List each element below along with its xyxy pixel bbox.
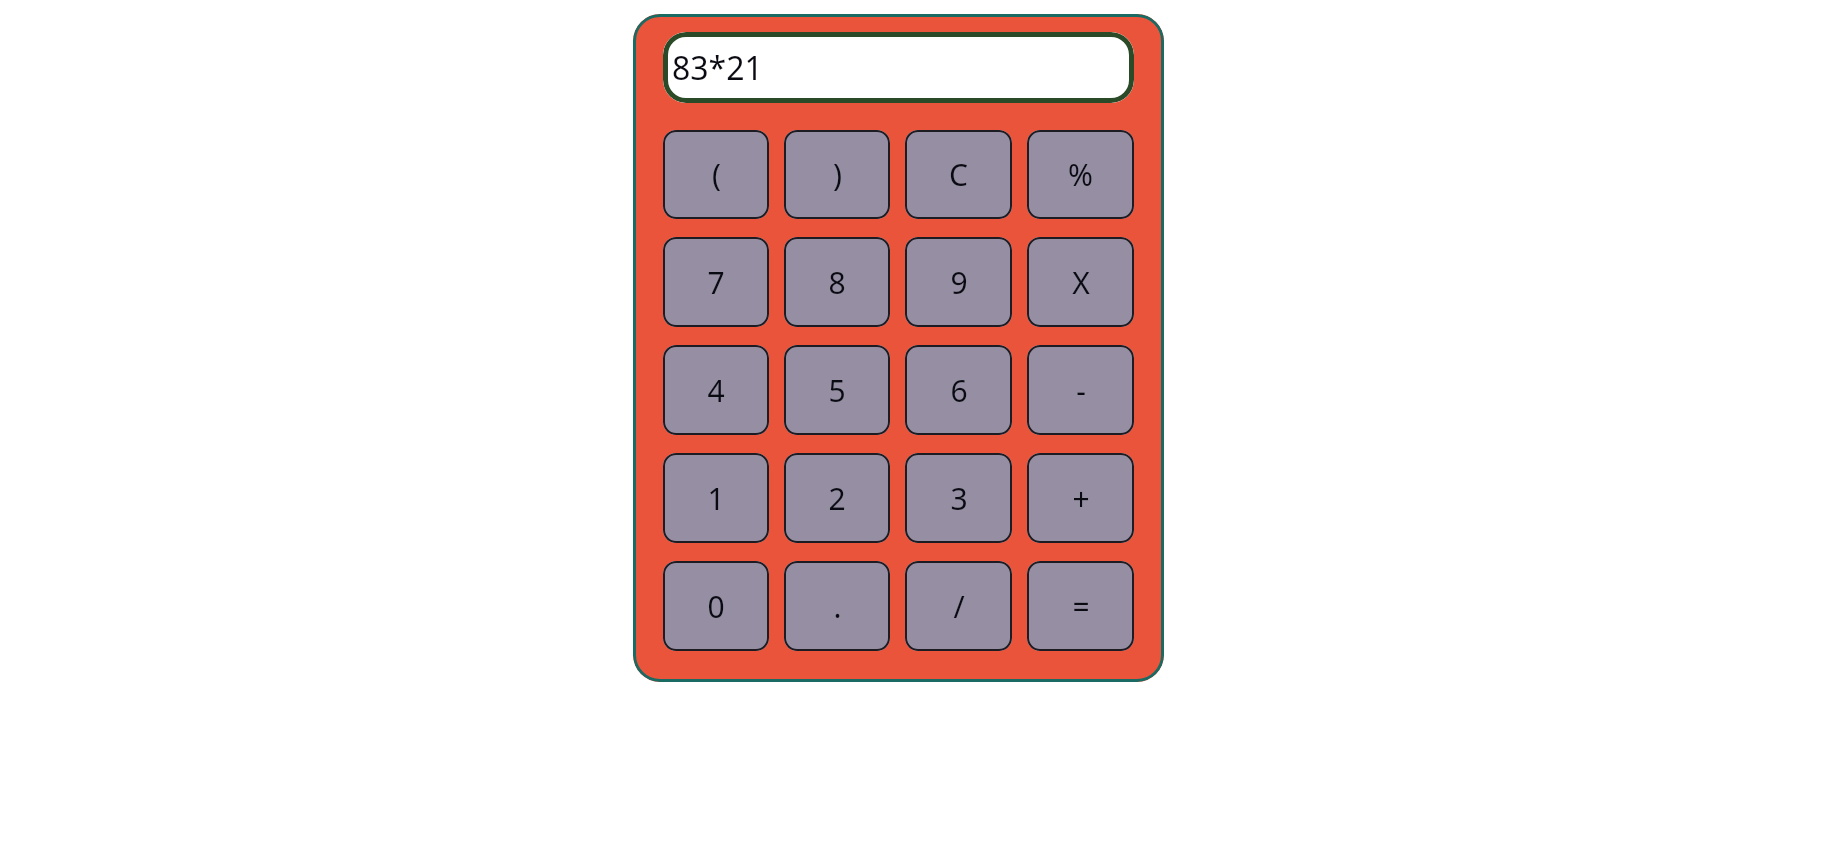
button[interactable]: 9 [905,237,1012,327]
staticText: 7 [707,262,725,303]
staticText: 0 [707,586,725,627]
staticText: 9 [950,262,968,303]
staticText: % [1068,154,1093,195]
button[interactable]: 83*21 [663,32,1134,103]
button[interactable]: Close parenthesis [784,130,890,219]
button[interactable]: Subtract [1027,345,1134,435]
button[interactable]: Add [1027,453,1134,543]
staticText: C [949,154,968,195]
staticText: + [1072,478,1090,519]
staticText: 3 [950,478,968,519]
staticText: 8 [828,262,846,303]
staticText: / [953,586,965,627]
staticText: ( [712,154,721,195]
button[interactable]: Clear [905,130,1012,219]
button[interactable]: 1 [663,453,769,543]
button[interactable]: 2 [784,453,890,543]
button[interactable]: 3 [905,453,1012,543]
staticText: 5 [828,370,846,411]
staticText: = [1072,586,1090,627]
staticText: X [1072,262,1090,303]
staticText: . [833,586,842,627]
button[interactable]: 6 [905,345,1012,435]
staticText: 2 [828,478,846,519]
staticText: 83*21 [672,46,763,90]
button[interactable]: Percent [1027,130,1134,219]
button[interactable]: 7 [663,237,769,327]
staticText: - [1076,370,1086,411]
button[interactable]: Decimal point [784,561,890,651]
button[interactable]: Multiply [1027,237,1134,327]
button[interactable]: 8 [784,237,890,327]
button[interactable]: 5 [784,345,890,435]
button[interactable]: Divide [905,561,1012,651]
staticText: 1 [707,478,725,519]
staticText: 6 [950,370,968,411]
staticText: 4 [707,370,725,411]
button[interactable]: Equals [1027,561,1134,651]
staticText: ) [833,154,842,195]
button[interactable]: 4 [663,345,769,435]
button[interactable]: 0 [663,561,769,651]
button[interactable]: Open parenthesis [663,130,769,219]
